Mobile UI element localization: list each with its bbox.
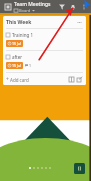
staticText: Training 1: [12, 32, 33, 38]
button[interactable]: Open in full: [75, 75, 83, 83]
button[interactable]: Training 1: [6, 32, 83, 47]
button[interactable]: +: [6, 76, 67, 83]
staticText: after: [12, 54, 23, 60]
button[interactable]: Filter: [56, 1, 67, 12]
staticText: 15 Jul: [12, 63, 21, 68]
button[interactable]: after: [6, 54, 83, 69]
button[interactable]: List options: [75, 18, 83, 26]
staticText: This Week: [6, 19, 75, 26]
staticText: +: [6, 76, 9, 83]
staticText: Team Meetings: [14, 1, 51, 8]
staticText: 1: [29, 63, 32, 68]
staticText: Add card: [10, 77, 29, 83]
button[interactable]: Menu: [2, 1, 13, 12]
button[interactable]: This Week: [3, 16, 86, 85]
button[interactable]: Notifications: [67, 1, 78, 12]
staticText: 15 Jul: [12, 41, 21, 46]
staticText: Board: [19, 8, 31, 13]
button[interactable]: Template: [67, 75, 75, 83]
button[interactable]: More options: [78, 1, 89, 12]
button[interactable]: Add: [74, 163, 85, 174]
